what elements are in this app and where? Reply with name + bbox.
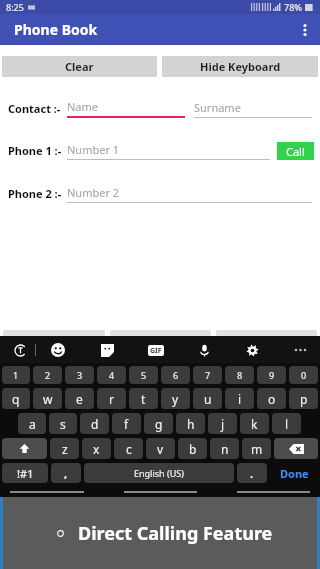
staticText: 3: [77, 369, 83, 381]
button[interactable]: English (US): [84, 463, 234, 483]
button[interactable]: n: [210, 438, 239, 459]
button[interactable]: u: [193, 388, 222, 409]
button[interactable]: 0: [289, 366, 318, 384]
button[interactable]: v: [146, 438, 175, 459]
button[interactable]: Hide Keyboard: [162, 56, 318, 77]
button[interactable]: d: [80, 413, 109, 434]
button[interactable]: w: [33, 388, 62, 409]
button[interactable]: k: [240, 413, 269, 434]
staticText: h: [187, 416, 195, 432]
button[interactable]: t: [129, 388, 158, 409]
button[interactable]: l: [272, 413, 301, 434]
staticText: o: [268, 391, 276, 407]
button[interactable]: i: [225, 388, 254, 409]
staticText: v: [157, 441, 164, 457]
button[interactable]: h: [176, 413, 205, 434]
staticText: Phone 1 :-: [8, 143, 62, 158]
staticText: .: [250, 466, 254, 481]
staticText: y: [172, 391, 179, 407]
staticText: u: [204, 391, 212, 407]
button[interactable]: 9: [257, 366, 286, 384]
staticText: 2: [45, 369, 51, 381]
staticText: q: [12, 391, 20, 407]
button[interactable]: 2: [33, 366, 62, 384]
button[interactable]: 8: [225, 366, 254, 384]
staticText: 6: [173, 369, 179, 381]
button[interactable]: Shift: [2, 438, 47, 459]
button[interactable]: Clear: [2, 56, 157, 77]
staticText: Done: [280, 466, 309, 481]
button[interactable]: More: [290, 340, 310, 360]
button[interactable]: 7: [193, 366, 222, 384]
button[interactable]: ,: [51, 463, 81, 483]
button[interactable]: s: [49, 413, 77, 434]
staticText: t: [141, 391, 146, 407]
staticText: e: [76, 391, 83, 407]
staticText: c: [126, 441, 132, 457]
staticText: n: [221, 441, 229, 457]
button[interactable]: Keyboard settings: [242, 340, 262, 360]
button[interactable]: q: [2, 388, 30, 409]
staticText: GIF: [150, 346, 162, 356]
button[interactable]: More options: [290, 14, 320, 45]
staticText: x: [93, 441, 100, 457]
staticText: d: [91, 416, 99, 432]
staticText: Number 1: [67, 142, 120, 157]
button[interactable]: Emoji: [48, 340, 68, 360]
staticText: Number 2: [67, 185, 120, 200]
button[interactable]: Search: [10, 340, 30, 360]
button[interactable]: b: [178, 438, 207, 459]
staticText: 9: [269, 369, 275, 381]
staticText: ,: [64, 466, 68, 481]
button[interactable]: Backspace: [274, 438, 318, 459]
staticText: 5: [141, 369, 147, 381]
button[interactable]: x: [82, 438, 111, 459]
staticText: a: [29, 416, 36, 432]
button[interactable]: f: [112, 413, 141, 434]
staticText: Contact :-: [8, 101, 61, 116]
button[interactable]: z: [50, 438, 79, 459]
staticText: 7: [205, 369, 211, 381]
staticText: !#1: [17, 466, 34, 481]
button[interactable]: c: [114, 438, 143, 459]
staticText: 8:25: [6, 1, 24, 13]
button[interactable]: a: [18, 413, 46, 434]
button[interactable]: g: [144, 413, 173, 434]
button[interactable]: 1: [2, 366, 30, 384]
button[interactable]: GIF: [146, 340, 166, 360]
staticText: l: [285, 416, 289, 432]
button[interactable]: p: [289, 388, 318, 409]
staticText: Phone 2 :-: [8, 186, 62, 201]
staticText: i: [238, 391, 242, 407]
button[interactable]: 3: [65, 366, 94, 384]
button[interactable]: !#1: [2, 463, 48, 483]
staticText: b: [189, 441, 197, 457]
staticText: s: [60, 416, 66, 432]
button[interactable]: Done: [270, 463, 318, 483]
staticText: m: [251, 441, 263, 457]
staticText: r: [109, 391, 114, 407]
button[interactable]: j: [208, 413, 237, 434]
staticText: Direct Calling Feature: [78, 521, 273, 546]
button[interactable]: m: [242, 438, 271, 459]
button[interactable]: y: [161, 388, 190, 409]
button[interactable]: r: [97, 388, 126, 409]
staticText: z: [62, 441, 68, 457]
button[interactable]: e: [65, 388, 94, 409]
button[interactable]: Stickers: [97, 340, 117, 360]
button[interactable]: 6: [161, 366, 190, 384]
button[interactable]: 4: [97, 366, 126, 384]
button[interactable]: o: [257, 388, 286, 409]
button[interactable]: Voice input: [194, 340, 214, 360]
button[interactable]: .: [237, 463, 267, 483]
button[interactable]: 5: [129, 366, 158, 384]
button[interactable]: Call: [277, 142, 314, 160]
staticText: p: [300, 391, 308, 407]
staticText: w: [43, 391, 53, 407]
